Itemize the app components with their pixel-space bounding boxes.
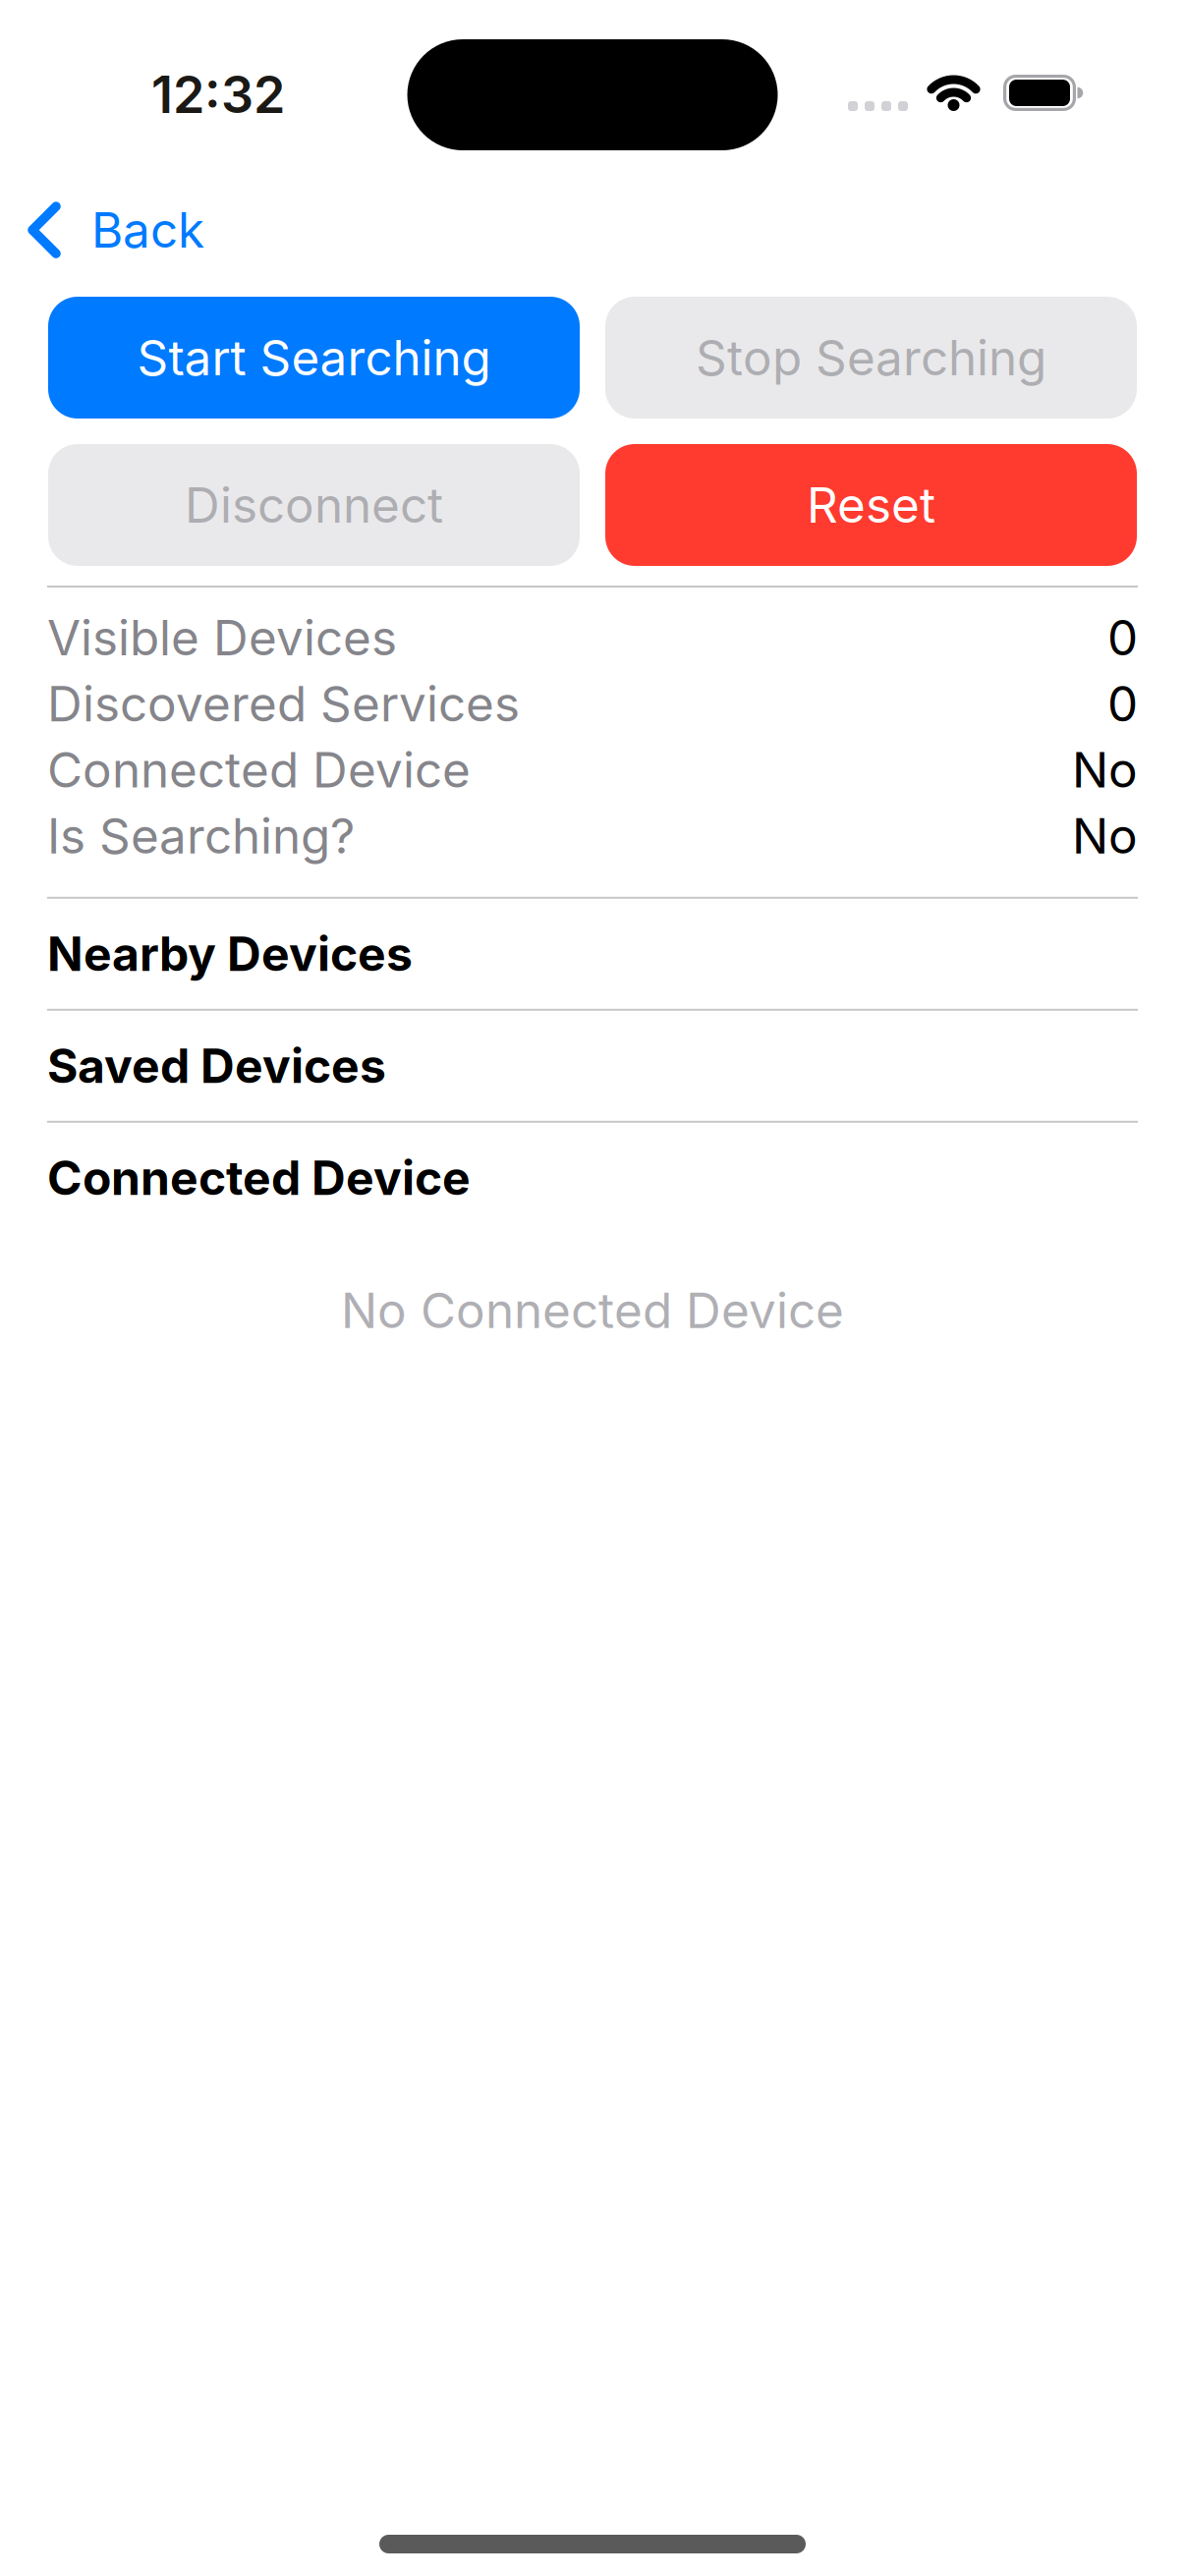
staticText: Discovered Services — [47, 675, 520, 732]
button[interactable]: Back — [0, 150, 204, 259]
staticText: Connected Device — [47, 1150, 471, 1206]
staticText: Stop Searching — [696, 329, 1046, 386]
staticText: Nearby Devices — [47, 926, 413, 982]
button[interactable]: Start Searching — [48, 297, 580, 419]
staticText: 0 — [1107, 675, 1138, 732]
staticText: Connected Device — [47, 741, 471, 798]
staticText: No — [1072, 741, 1138, 798]
staticText: 0 — [1107, 609, 1138, 666]
staticText: Back — [91, 201, 204, 259]
button[interactable]: Stop Searching — [605, 297, 1137, 419]
staticText: Start Searching — [137, 329, 491, 386]
staticText: 12:32 — [151, 64, 285, 124]
button[interactable]: Reset — [605, 444, 1137, 566]
staticText: Reset — [807, 476, 935, 534]
staticText: No — [1072, 807, 1138, 864]
staticText: Disconnect — [185, 476, 443, 534]
staticText: No Connected Device — [341, 1282, 844, 1339]
staticText: Visible Devices — [47, 609, 397, 666]
staticText: Saved Devices — [47, 1038, 386, 1094]
button[interactable]: Disconnect — [48, 444, 580, 566]
staticText: Is Searching? — [47, 807, 355, 864]
